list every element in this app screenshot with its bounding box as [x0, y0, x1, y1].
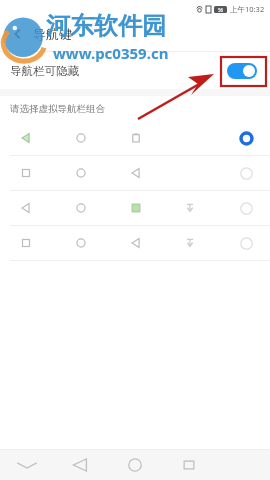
- staticText: 请选择虚拟导航栏组合: [10, 103, 105, 115]
- staticText: 导航键: [33, 26, 72, 42]
- button[interactable]: Home: [108, 450, 162, 480]
- staticText: 56: [218, 7, 224, 13]
- button[interactable]: [0, 156, 270, 190]
- button[interactable]: Back: [54, 450, 108, 480]
- button[interactable]: 导航栏可隐藏: [0, 52, 270, 89]
- staticText: 导航栏可隐藏: [10, 64, 79, 78]
- button[interactable]: [0, 121, 270, 155]
- staticText: www.pc0359.cn: [53, 43, 169, 63]
- button[interactable]: [0, 191, 270, 225]
- button[interactable]: Hide navigation bar: [0, 450, 54, 480]
- staticText: 河东软件园: [46, 11, 166, 41]
- staticText: 上午10:32: [230, 4, 265, 14]
- button[interactable]: Back: [5, 21, 31, 47]
- button[interactable]: [0, 226, 270, 260]
- button[interactable]: Recents: [162, 450, 216, 480]
